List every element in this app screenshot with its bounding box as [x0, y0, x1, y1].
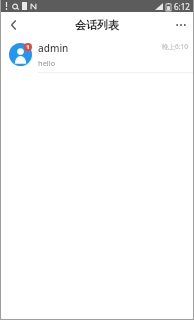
- staticText: admin: [38, 41, 69, 55]
- staticText: 会话列表: [75, 18, 119, 32]
- button[interactable]: Back: [0, 12, 26, 37]
- staticText: 1: [26, 43, 30, 51]
- button[interactable]: More options: [168, 12, 194, 37]
- staticText: 晚上6:10: [162, 42, 188, 51]
- staticText: 6:12: [174, 1, 190, 12]
- staticText: hello: [38, 58, 56, 68]
- button[interactable]: 1: [0, 37, 194, 73]
